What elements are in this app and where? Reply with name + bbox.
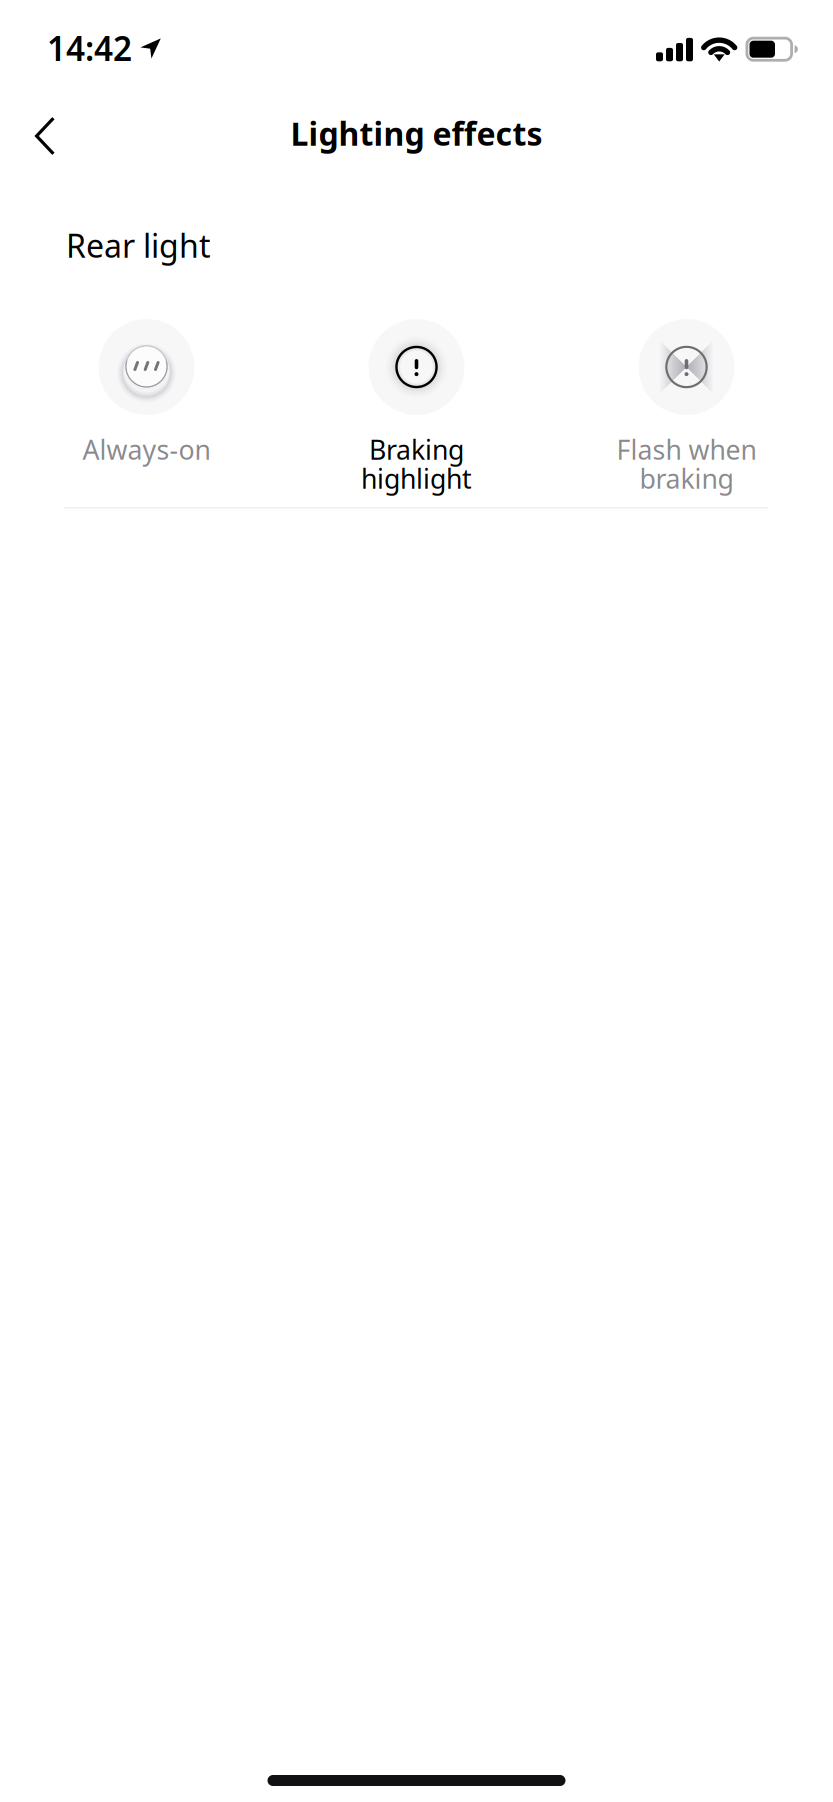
staticText: Always-on (82, 432, 210, 467)
staticText: Rear light (66, 224, 211, 266)
button[interactable]: Flash when braking (579, 319, 794, 501)
staticText: highlight (361, 461, 472, 496)
staticText: Lighting effects (290, 112, 542, 154)
button[interactable]: Back (7, 98, 83, 174)
button[interactable]: Braking highlight (309, 319, 524, 501)
staticText: Flash when (616, 432, 756, 467)
staticText: Braking (369, 432, 464, 467)
button[interactable]: Always-on (39, 319, 254, 501)
staticText: braking (639, 461, 733, 496)
staticText: 14:42 (47, 26, 132, 70)
